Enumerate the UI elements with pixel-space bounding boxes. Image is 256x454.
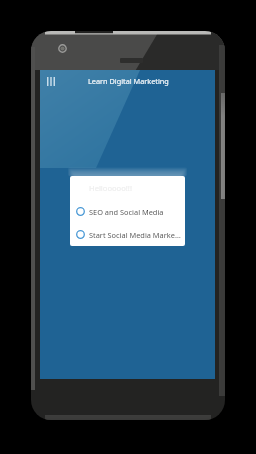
button[interactable]: Open navigation drawer: [43, 72, 59, 90]
button[interactable]: SEO and Social Media: [70, 200, 185, 223]
button[interactable]: Start Social Media Marke…: [70, 223, 185, 246]
staticText: Start Social Media Marke…: [89, 230, 181, 240]
staticText: SEO and Social Media: [89, 207, 164, 217]
staticText: Learn Digital Marketing: [88, 76, 169, 86]
staticText: Hellooooo!!!: [89, 183, 132, 193]
